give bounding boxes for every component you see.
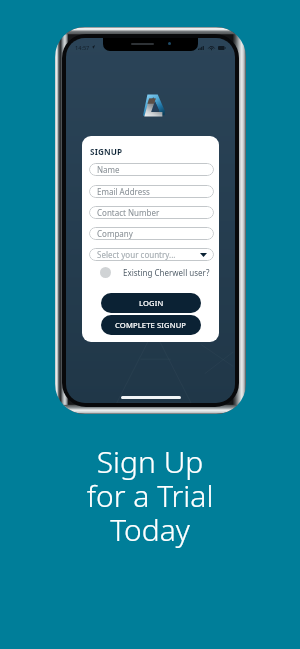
- staticText: Existing Cherwell user?: [123, 267, 210, 278]
- staticText: Select your country...: [97, 249, 176, 260]
- staticText: Name: [97, 164, 120, 175]
- button[interactable]: LOGIN: [101, 293, 201, 313]
- button[interactable]: Existing Cherwell user toggle: [100, 267, 210, 278]
- staticText: LOGIN: [139, 298, 164, 308]
- staticText: SIGNUP: [90, 146, 123, 157]
- button[interactable]: Contact Number: [89, 206, 214, 219]
- staticText: Contact Number: [97, 207, 160, 218]
- button[interactable]: Name: [89, 163, 214, 176]
- staticText: Sign Up for a Trial Today: [0, 441, 300, 550]
- staticText: COMPLETE SIGNUP: [115, 320, 187, 330]
- staticText: Email Address: [97, 186, 150, 197]
- button[interactable]: Select your country...: [89, 248, 214, 261]
- button[interactable]: Company: [89, 227, 214, 240]
- staticText: 14:57: [75, 44, 90, 50]
- button[interactable]: Email Address: [89, 185, 214, 198]
- staticText: Company: [97, 228, 133, 239]
- button[interactable]: COMPLETE SIGNUP: [101, 315, 201, 335]
